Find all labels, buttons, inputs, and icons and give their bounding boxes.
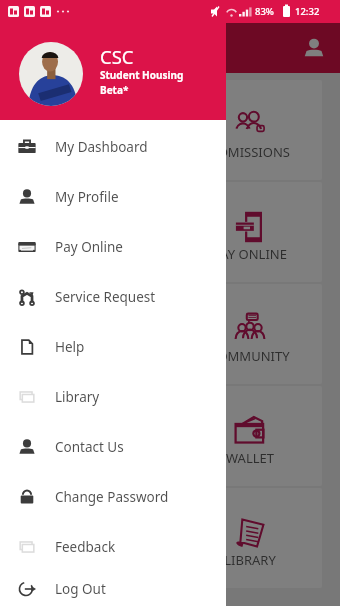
staticText: COMMUNITY [209, 347, 290, 365]
button[interactable]: Profile [303, 37, 325, 59]
staticText: COMPLAINT [53, 449, 128, 467]
button[interactable]: PROFILE [18, 80, 163, 180]
staticText: Change Password [55, 488, 169, 506]
button[interactable]: Feedback [0, 522, 226, 572]
button[interactable]: COMMUNITY [177, 284, 322, 384]
button[interactable]: My Profile [0, 172, 226, 222]
button[interactable]: NOTICE [18, 284, 163, 384]
button[interactable]: GALLERY [18, 488, 163, 588]
button[interactable]: COMPLAINT [18, 386, 163, 486]
button[interactable]: PAY ONLINE [177, 182, 322, 282]
staticText: NOTICE [67, 347, 114, 365]
staticText: 12:32 [295, 5, 320, 18]
staticText: My Profile [55, 188, 119, 206]
button[interactable]: WALLET [177, 386, 322, 486]
staticText: PROFILE [65, 143, 117, 161]
button[interactable]: Pay Online [0, 222, 226, 272]
staticText: Feedback [55, 538, 116, 556]
button[interactable]: Contact Us [0, 422, 226, 472]
staticText: HOSTEL [66, 245, 115, 263]
staticText: Library [55, 388, 100, 406]
button[interactable]: LIBRARY [177, 488, 322, 588]
staticText: Help [55, 338, 85, 356]
button[interactable]: Help [0, 322, 226, 372]
button[interactable]: HOSTEL [18, 182, 163, 282]
staticText: Service Request [55, 288, 156, 306]
staticText: CSC [100, 44, 134, 69]
staticText: Student Housing [100, 68, 184, 82]
button[interactable]: ADMISSIONS [177, 80, 322, 180]
staticText: My Dashboard [55, 138, 148, 156]
staticText: 83% [255, 5, 274, 18]
button[interactable]: Service Request [0, 272, 226, 322]
staticText: Pay Online [55, 238, 123, 256]
staticText: Beta* [100, 83, 129, 97]
button[interactable]: Log Out [0, 572, 226, 606]
staticText: Log Out [55, 580, 106, 598]
staticText: Contact Us [55, 438, 124, 456]
staticText: GALLERY [63, 551, 118, 569]
button[interactable]: Library [0, 372, 226, 422]
staticText: LIBRARY [224, 551, 276, 569]
button[interactable]: Change Password [0, 472, 226, 522]
staticText: WALLET [226, 449, 274, 467]
staticText: ADMISSIONS [210, 143, 290, 161]
button[interactable]: My Dashboard [0, 122, 226, 172]
staticText: PAY ONLINE [213, 245, 287, 263]
